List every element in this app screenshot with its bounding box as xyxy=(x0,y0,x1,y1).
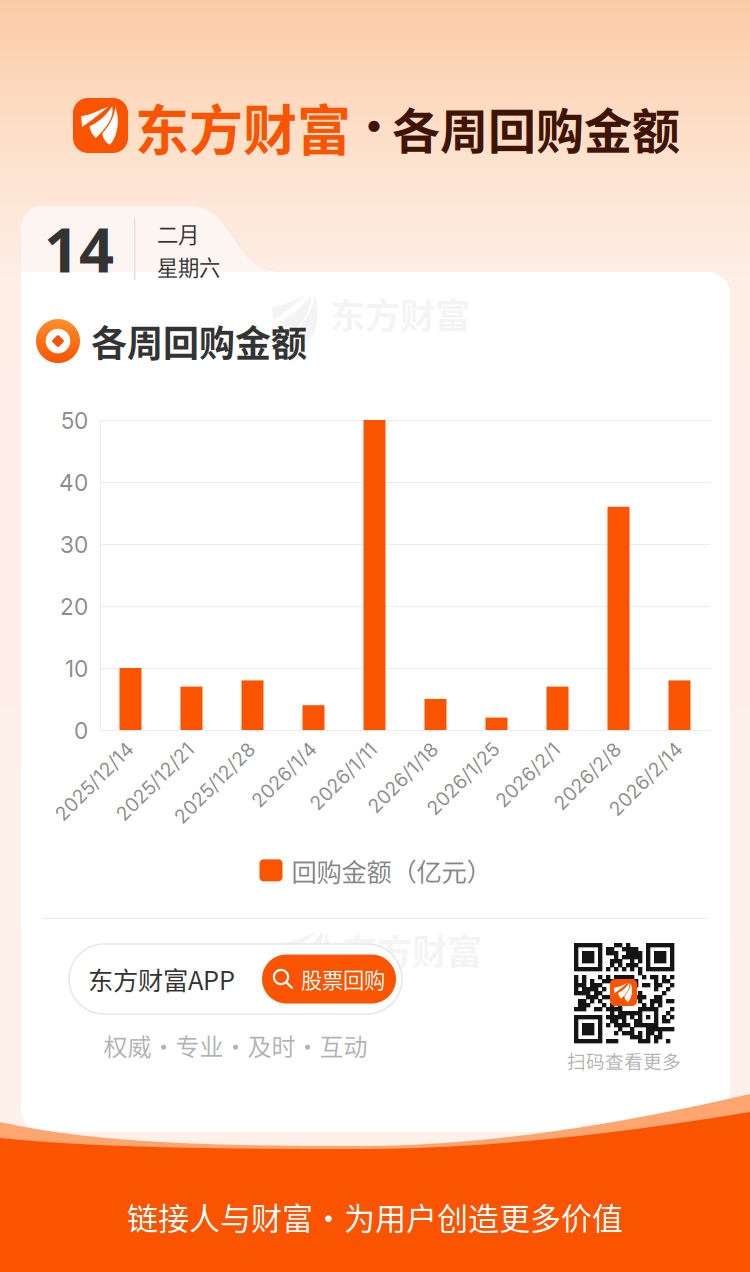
staticText: 2026/1/18 xyxy=(337,737,427,761)
staticText: 2025/12/28 xyxy=(139,737,244,761)
staticText: 星期六 xyxy=(157,251,220,282)
staticText: 二月 xyxy=(157,218,199,249)
staticText: 20 xyxy=(60,593,88,620)
staticText: 股票回购 xyxy=(301,964,385,994)
staticText: 扫码查看更多 xyxy=(567,1047,681,1074)
staticText: 回购金额（亿元） xyxy=(291,852,491,889)
staticText: 2026/1/25 xyxy=(395,737,488,761)
staticText: 2026/2/8 xyxy=(524,737,610,761)
staticText: 东方财富APP xyxy=(88,961,235,997)
staticText: 2026/2/14 xyxy=(577,737,671,761)
staticText: 30 xyxy=(60,531,88,558)
staticText: 2026/1/11 xyxy=(280,737,366,761)
staticText: 0 xyxy=(74,717,88,744)
staticText: 50 xyxy=(61,407,88,434)
staticText: 2026/2/1 xyxy=(467,737,549,761)
staticText: 链接人与财富·为用户创造更多价值 xyxy=(127,1194,623,1239)
staticText: 40 xyxy=(59,469,88,496)
staticText: 东方财富 xyxy=(135,88,351,166)
staticText: 10 xyxy=(65,655,88,682)
staticText: 各周回购金额 xyxy=(91,315,307,367)
staticText: 14 xyxy=(44,208,114,289)
staticText: 2025/12/21 xyxy=(82,737,183,761)
staticText: 东方财富 xyxy=(342,924,482,975)
staticText: 2025/12/14 xyxy=(21,737,122,761)
staticText: 2026/1/4 xyxy=(223,737,305,761)
staticText: 权威·专业·及时·互动 xyxy=(103,1028,367,1063)
staticText: 各周回购金额 xyxy=(392,93,680,162)
staticText: 东方财富 xyxy=(330,288,470,339)
staticText: · xyxy=(352,92,396,156)
